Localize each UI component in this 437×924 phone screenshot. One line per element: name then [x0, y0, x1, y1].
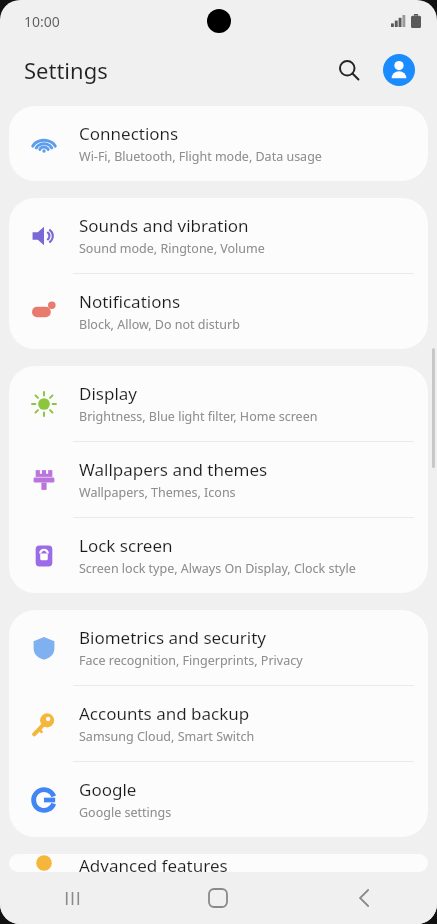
button[interactable]: Display [9, 366, 428, 441]
staticText: Samsung Cloud, Smart Switch [79, 728, 255, 745]
button[interactable]: Advanced features [9, 854, 428, 872]
staticText: Advanced features [79, 854, 228, 872]
button[interactable]: Home [145, 872, 291, 924]
staticText: Settings [24, 55, 108, 85]
button[interactable]: Back [291, 872, 437, 924]
button[interactable]: Google [9, 762, 428, 837]
staticText: Sounds and vibration [79, 214, 249, 237]
staticText: Lock screen [79, 534, 173, 557]
staticText: Display [79, 382, 137, 405]
staticText: Biometrics and security [79, 626, 266, 649]
staticText: Wallpapers, Themes, Icons [79, 484, 236, 501]
staticText: 10:00 [24, 12, 60, 31]
staticText: Google [79, 778, 137, 801]
button[interactable]: Notifications [9, 274, 428, 349]
staticText: Notifications [79, 290, 181, 313]
staticText: Accounts and backup [79, 702, 250, 725]
button[interactable]: Accounts and backup [9, 686, 428, 761]
button[interactable]: Recents [0, 872, 145, 924]
staticText: Wi-Fi, Bluetooth, Flight mode, Data usag… [79, 148, 322, 165]
button[interactable]: Search [327, 48, 371, 92]
button[interactable]: Account [377, 48, 421, 92]
staticText: Screen lock type, Always On Display, Clo… [79, 560, 356, 577]
staticText: Face recognition, Fingerprints, Privacy [79, 652, 303, 669]
button[interactable]: Connections [9, 106, 428, 181]
button[interactable]: Sounds and vibration [9, 198, 428, 273]
staticText: Block, Allow, Do not disturb [79, 316, 240, 333]
button[interactable]: Biometrics and security [9, 610, 428, 685]
staticText: Wallpapers and themes [79, 458, 268, 481]
staticText: Connections [79, 122, 179, 145]
staticText: Sound mode, Ringtone, Volume [79, 240, 265, 257]
staticText: Brightness, Blue light filter, Home scre… [79, 408, 318, 425]
button[interactable]: Wallpapers and themes [9, 442, 428, 517]
button[interactable]: Lock screen [9, 518, 428, 593]
staticText: Google settings [79, 804, 172, 821]
